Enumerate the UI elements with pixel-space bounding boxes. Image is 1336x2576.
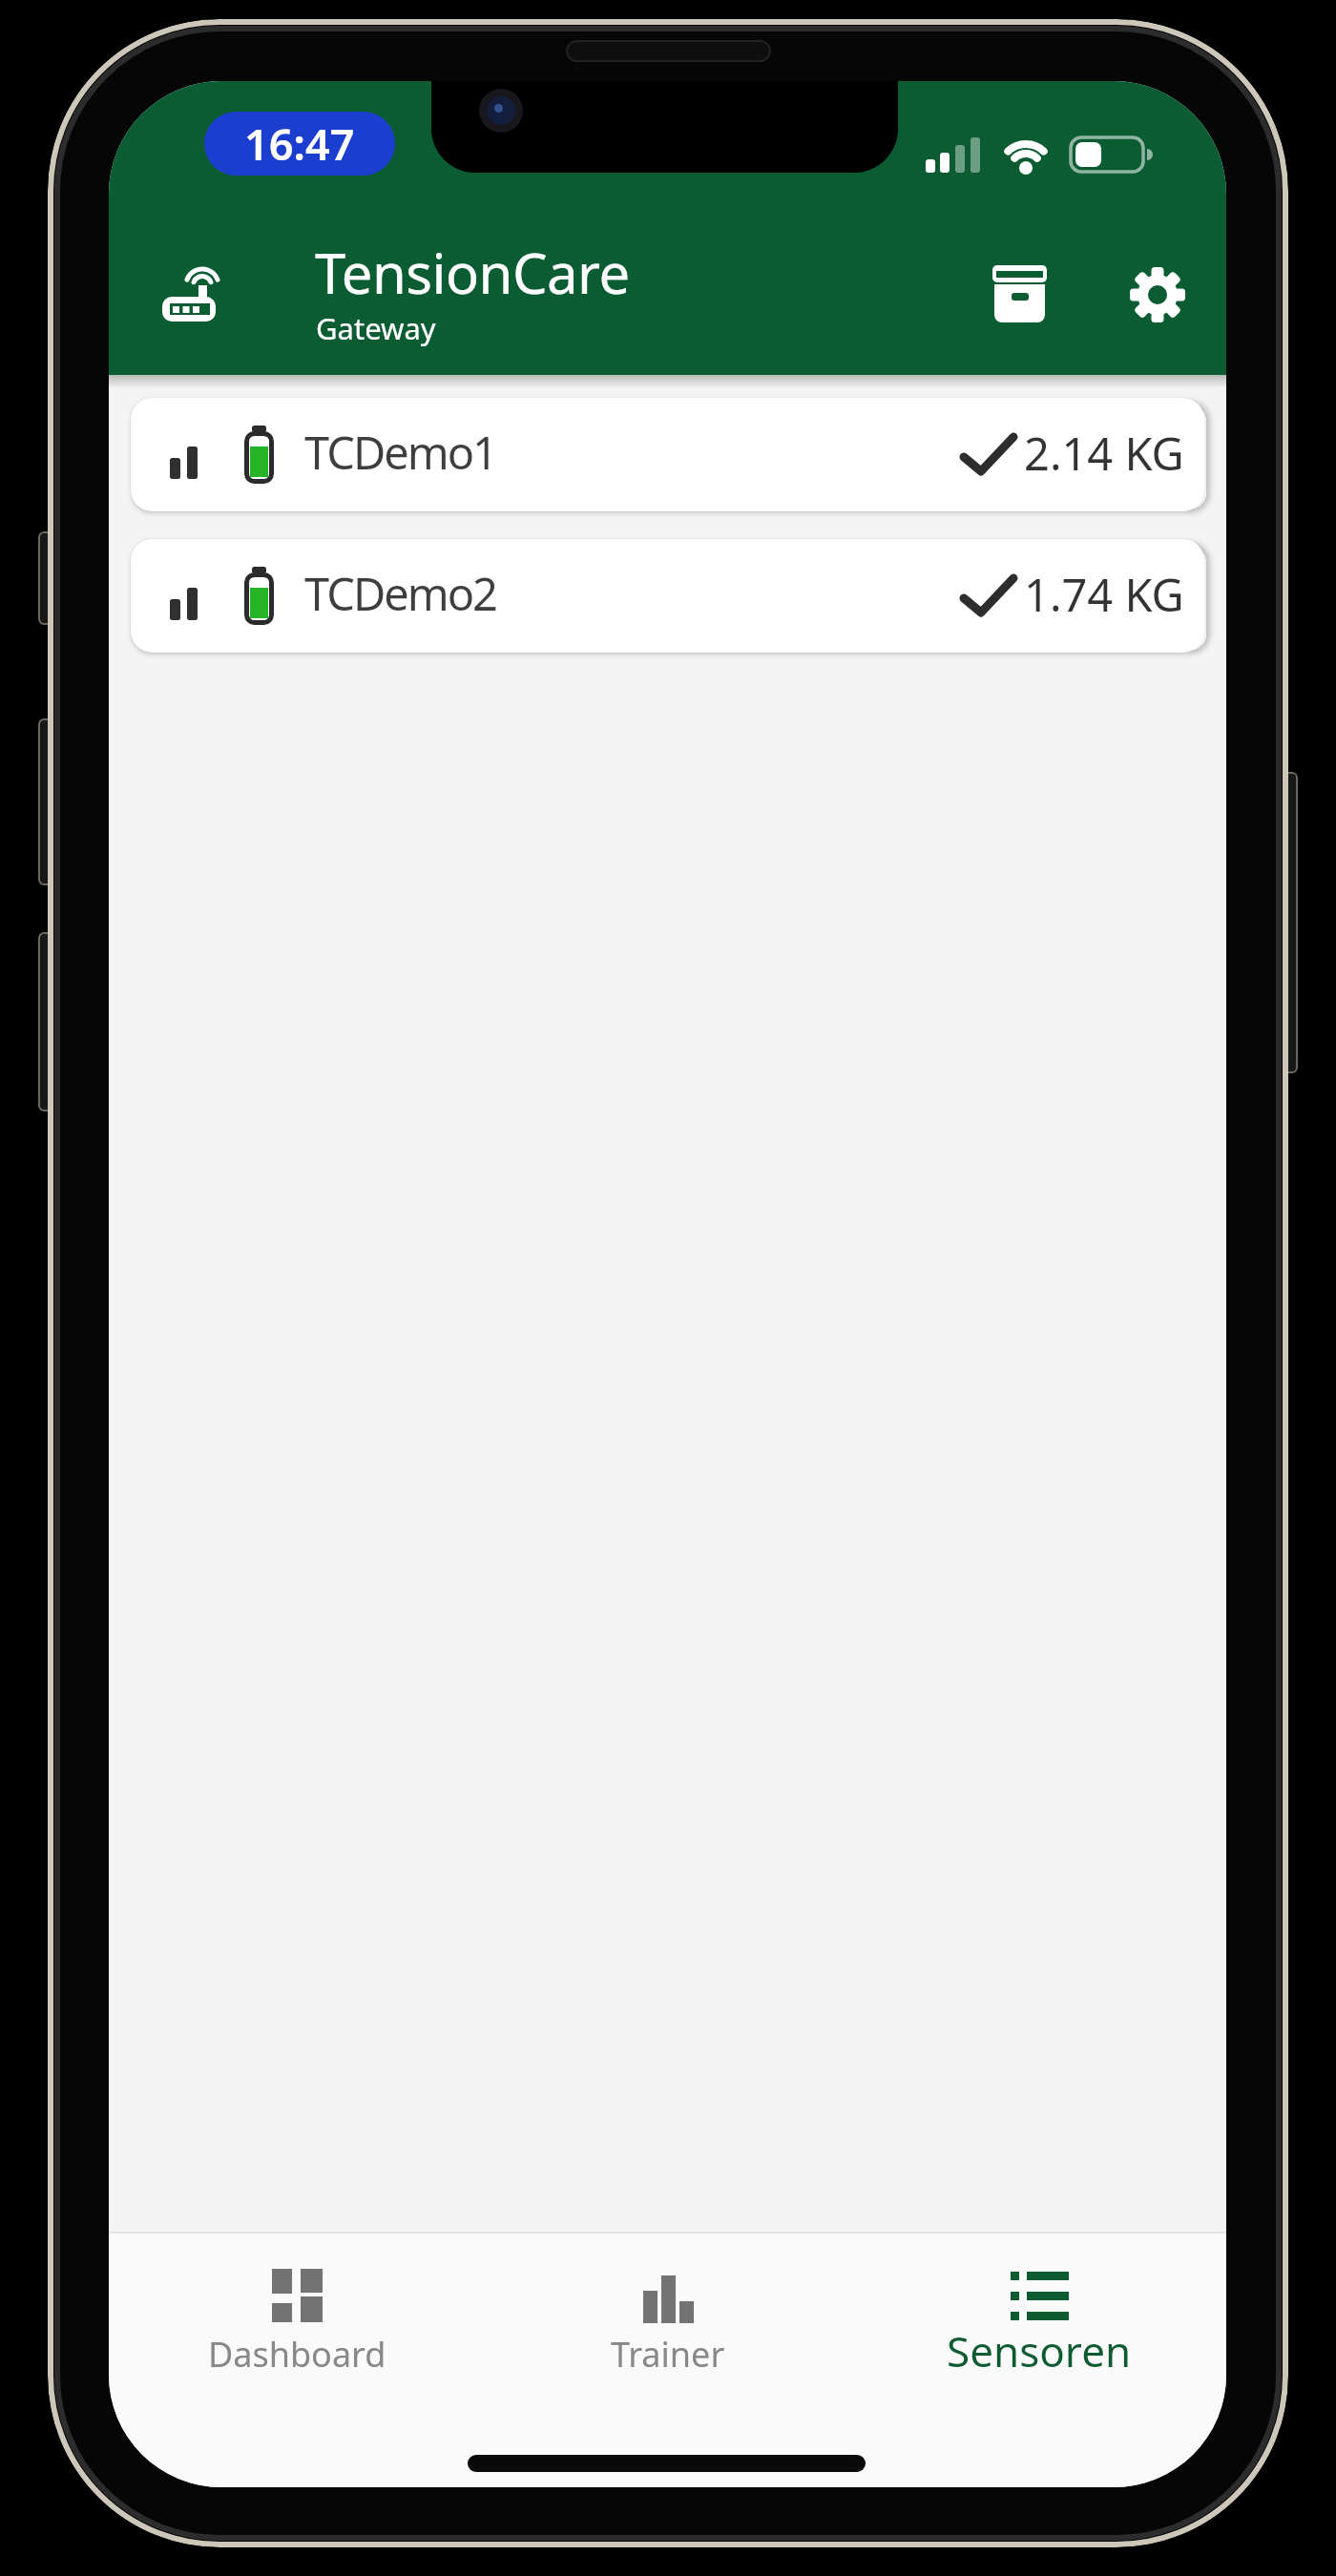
- staticText: TCDemo1: [304, 422, 496, 483]
- button[interactable]: TCDemo2: [131, 539, 1204, 653]
- staticText: TCDemo2: [304, 563, 496, 624]
- staticText: TensionCare: [315, 235, 630, 310]
- button[interactable]: Sensoren: [896, 2256, 1182, 2399]
- staticText: Gateway: [316, 308, 436, 348]
- button[interactable]: Dashboard: [154, 2256, 440, 2399]
- staticText: 16:47: [244, 114, 355, 173]
- button[interactable]: [1131, 267, 1184, 322]
- staticText: Trainer: [611, 2331, 725, 2378]
- button[interactable]: [991, 263, 1050, 326]
- staticText: 2.14 KG: [1024, 423, 1184, 484]
- button[interactable]: TCDemo1: [131, 398, 1204, 511]
- staticText: 1.74 KG: [1024, 564, 1184, 625]
- button[interactable]: Trainer: [525, 2256, 811, 2399]
- staticText: Dashboard: [208, 2331, 386, 2378]
- staticText: Sensoren: [947, 2322, 1132, 2379]
